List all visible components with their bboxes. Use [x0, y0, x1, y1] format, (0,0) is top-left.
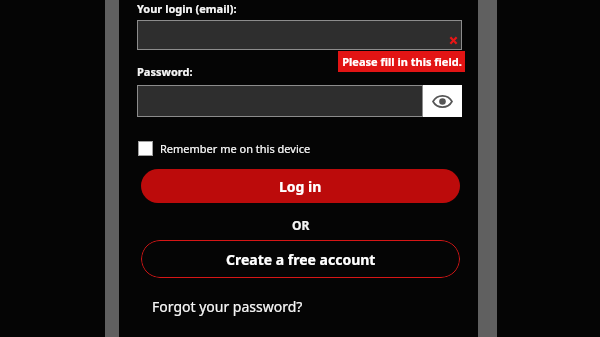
button[interactable]: Create a free account: [141, 240, 460, 278]
staticText: Log in: [279, 177, 322, 196]
staticText: Create a free account: [226, 250, 376, 269]
staticText: Please fill in this field.: [342, 54, 462, 69]
staticText: Remember me on this device: [160, 141, 311, 156]
button[interactable]: Password field: [137, 85, 423, 117]
button[interactable]: Show password: [423, 85, 462, 117]
staticText: OR: [292, 217, 310, 233]
staticText: Forgot your password?: [152, 297, 303, 316]
staticText: Your login (email):: [137, 1, 237, 16]
staticText: Password:: [137, 64, 193, 79]
button[interactable]: Log in: [141, 169, 460, 203]
button[interactable]: Remember me on this device: [138, 138, 311, 158]
button[interactable]: Forgot your password?: [152, 297, 303, 316]
button[interactable]: Email field: [137, 20, 462, 50]
